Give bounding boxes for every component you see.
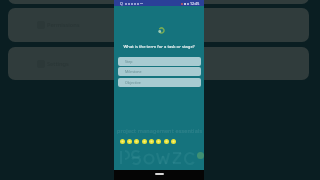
button[interactable]: Step [118,57,201,66]
staticText: What is the term for a task or stage? [116,44,202,50]
button[interactable]: Objective [118,78,201,87]
staticText: Objective [125,80,141,85]
button[interactable]: Hint [197,152,204,159]
staticText: Q [120,1,123,6]
staticText: Step [125,59,133,64]
button[interactable]: Permissions [8,8,309,42]
staticText: Milestone [125,69,142,74]
staticText: 12:45 [190,1,200,6]
staticText: project management essentials [117,127,203,134]
button[interactable]: Settings [8,47,309,80]
button[interactable]: Milestone [118,67,201,76]
button[interactable] [8,0,309,4]
